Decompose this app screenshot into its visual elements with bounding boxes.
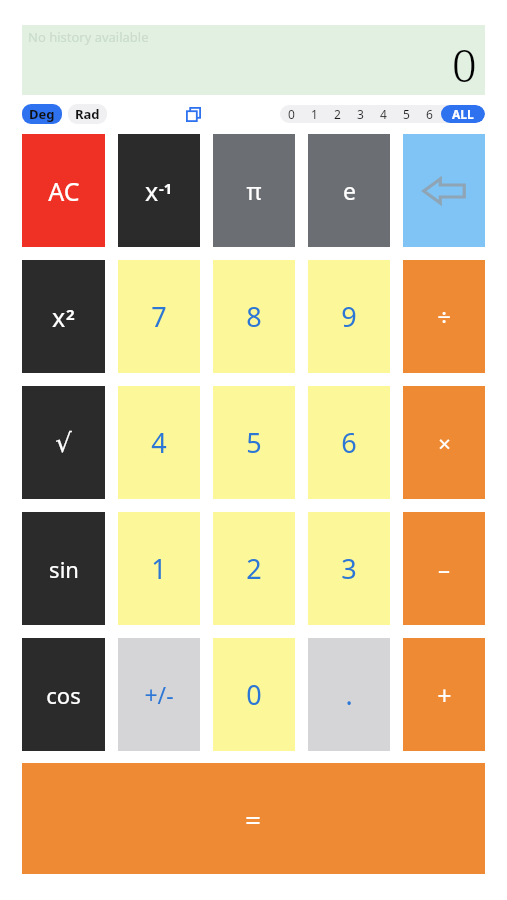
button[interactable]: 4 <box>118 386 200 499</box>
button[interactable]: 8 <box>213 260 295 373</box>
staticText: 2 <box>334 106 341 122</box>
staticText: cos <box>46 680 81 710</box>
button[interactable]: sin <box>22 512 105 625</box>
staticText: 8 <box>246 298 262 335</box>
button[interactable]: 3 <box>308 512 390 625</box>
button[interactable]: π <box>213 134 295 247</box>
staticText: 1 <box>151 550 167 587</box>
staticText: No history available <box>28 28 149 46</box>
button[interactable]: Deg <box>22 104 62 124</box>
button[interactable]: 2 <box>326 105 349 123</box>
staticText: 2 <box>246 550 262 587</box>
staticText: 7 <box>151 298 167 335</box>
staticText: 3 <box>357 106 364 122</box>
button[interactable]: 3 <box>349 105 372 123</box>
staticText: 0 <box>246 676 262 713</box>
button[interactable]: × <box>403 386 485 499</box>
staticText: = <box>245 800 262 838</box>
button[interactable]: 7 <box>118 260 200 373</box>
button[interactable]: 6 <box>308 386 390 499</box>
button[interactable]: 0 <box>280 105 303 123</box>
staticText: Deg <box>29 105 55 123</box>
button[interactable]: 9 <box>308 260 390 373</box>
button[interactable]: Copy <box>183 104 203 124</box>
staticText: AC <box>48 174 80 208</box>
staticText: 2 <box>66 304 75 324</box>
button[interactable]: Rad <box>68 104 107 124</box>
staticText: 6 <box>426 106 433 122</box>
button[interactable]: 2 <box>213 512 295 625</box>
staticText: – <box>438 552 450 585</box>
staticText: -1 <box>159 178 173 198</box>
staticText: 5 <box>403 106 410 122</box>
button[interactable]: 1 <box>303 105 326 123</box>
button[interactable]: AC <box>22 134 105 247</box>
button[interactable]: 1 <box>118 512 200 625</box>
staticText: . <box>345 676 353 713</box>
staticText: ÷ <box>437 300 451 333</box>
button[interactable]: e <box>308 134 390 247</box>
button[interactable]: x <box>118 134 200 247</box>
staticText: 0 <box>452 35 477 95</box>
staticText: 4 <box>151 424 167 461</box>
staticText: + <box>437 678 452 712</box>
staticText: 5 <box>246 424 262 461</box>
button[interactable]: ALL <box>441 105 485 123</box>
button[interactable]: √ <box>22 386 105 499</box>
staticText: 4 <box>380 106 387 122</box>
staticText: x <box>145 174 159 208</box>
button[interactable]: 5 <box>395 105 418 123</box>
button[interactable]: x <box>22 260 105 373</box>
staticText: √ <box>55 428 72 458</box>
button[interactable]: = <box>22 763 485 874</box>
staticText: 3 <box>341 550 357 587</box>
staticText: × <box>438 428 451 458</box>
button[interactable]: 5 <box>213 386 295 499</box>
button[interactable]: 4 <box>372 105 395 123</box>
staticText: ALL <box>452 106 474 122</box>
staticText: 0 <box>288 106 295 122</box>
button[interactable]: +/- <box>118 638 200 751</box>
button[interactable]: . <box>308 638 390 751</box>
staticText: x <box>52 300 66 334</box>
button[interactable]: + <box>403 638 485 751</box>
staticText: e <box>343 175 356 206</box>
staticText: 9 <box>341 298 357 335</box>
button[interactable]: 0 <box>213 638 295 751</box>
button[interactable]: Backspace <box>403 134 485 247</box>
staticText: Rad <box>75 105 100 123</box>
staticText: 6 <box>341 424 357 461</box>
staticText: +/- <box>144 679 174 710</box>
staticText: 1 <box>311 106 318 122</box>
staticText: sin <box>49 554 79 584</box>
button[interactable]: cos <box>22 638 105 751</box>
button[interactable]: – <box>403 512 485 625</box>
staticText: π <box>246 175 262 206</box>
button[interactable]: ÷ <box>403 260 485 373</box>
button[interactable]: 6 <box>418 105 441 123</box>
